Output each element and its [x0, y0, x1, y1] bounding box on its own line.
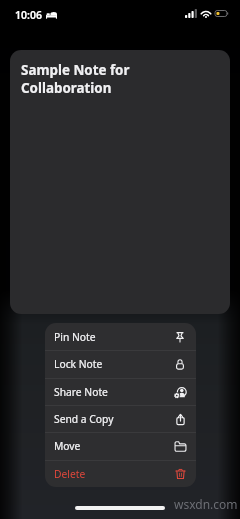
- button[interactable]: Pin Note: [45, 323, 196, 350]
- staticText: Share Note: [54, 385, 108, 399]
- button[interactable]: Send a Copy: [45, 405, 196, 432]
- staticText: Delete: [54, 467, 86, 481]
- button[interactable]: Move: [45, 432, 196, 459]
- staticText: Lock Note: [54, 357, 103, 371]
- staticText: Move: [54, 439, 81, 453]
- button[interactable]: Lock Note: [45, 350, 196, 377]
- staticText: wsxdn.com: [174, 496, 238, 512]
- button[interactable]: Sample Note for Collaboration: [10, 50, 230, 314]
- staticText: 10:06: [15, 8, 42, 22]
- staticText: Send a Copy: [54, 412, 114, 426]
- staticText: Sample Note for Collaboration: [21, 61, 130, 97]
- button[interactable]: Delete: [45, 460, 196, 487]
- staticText: Pin Note: [54, 330, 96, 344]
- button[interactable]: Share Note: [45, 378, 196, 405]
